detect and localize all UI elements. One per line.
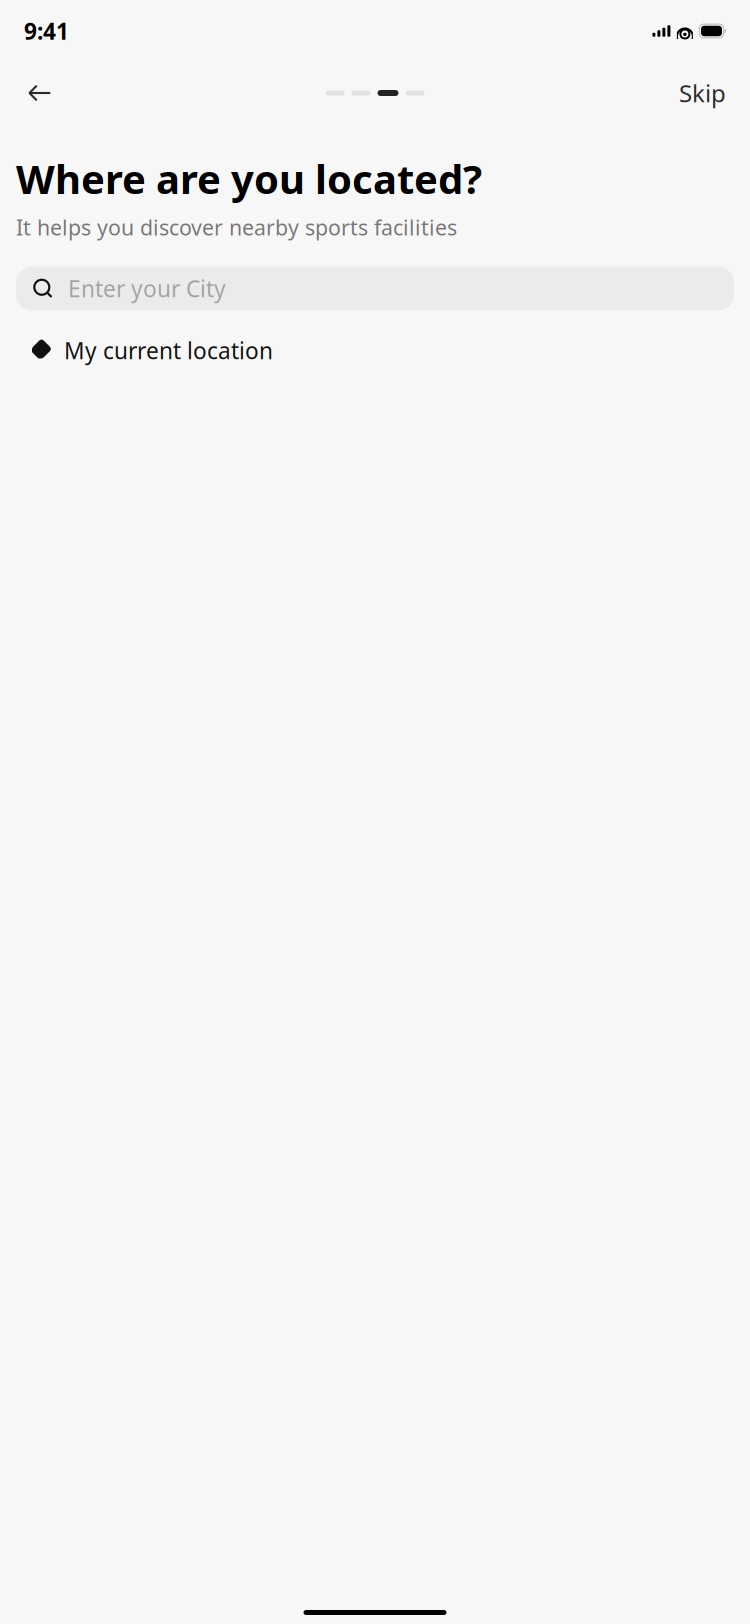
button[interactable]: My current location [12, 330, 738, 370]
staticText: Where are you located? [16, 152, 482, 205]
staticText: Skip [679, 77, 726, 109]
staticText: 9:41 [24, 16, 69, 46]
button[interactable]: Enter your City [16, 266, 734, 310]
staticText: My current location [64, 335, 273, 365]
button[interactable]: Back [18, 72, 60, 114]
staticText: It helps you discover nearby sports faci… [16, 213, 457, 241]
staticText: Enter your City [68, 273, 226, 303]
button[interactable]: Skip [673, 69, 732, 117]
